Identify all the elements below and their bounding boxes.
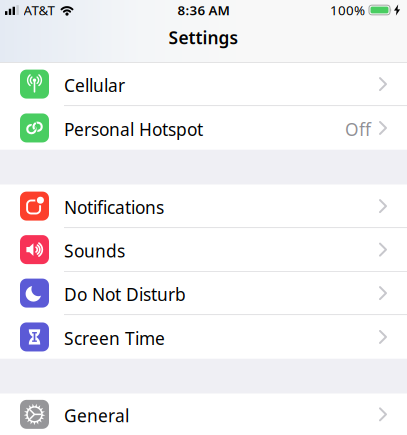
staticText: Cellular	[64, 74, 125, 97]
button[interactable]: Sounds	[0, 228, 407, 272]
staticText: 100%	[330, 1, 365, 19]
staticText: 8:36 AM	[177, 1, 229, 19]
button[interactable]: General	[0, 394, 407, 435]
staticText: AT&T	[23, 1, 54, 19]
staticText: Sounds	[64, 239, 125, 262]
button[interactable]: Do Not Disturb	[0, 272, 407, 315]
staticText: Settings	[168, 26, 238, 49]
button[interactable]: Notifications	[0, 185, 407, 228]
staticText: Notifications	[64, 196, 164, 219]
staticText: Do Not Disturb	[64, 283, 186, 306]
button[interactable]: Screen Time	[0, 315, 407, 359]
staticText: Screen Time	[64, 327, 165, 350]
staticText: Personal Hotspot	[64, 118, 203, 141]
staticText: General	[64, 404, 129, 427]
button[interactable]: Cellular	[0, 63, 407, 106]
button[interactable]: Personal Hotspot	[0, 106, 407, 150]
staticText: Off	[345, 118, 371, 141]
